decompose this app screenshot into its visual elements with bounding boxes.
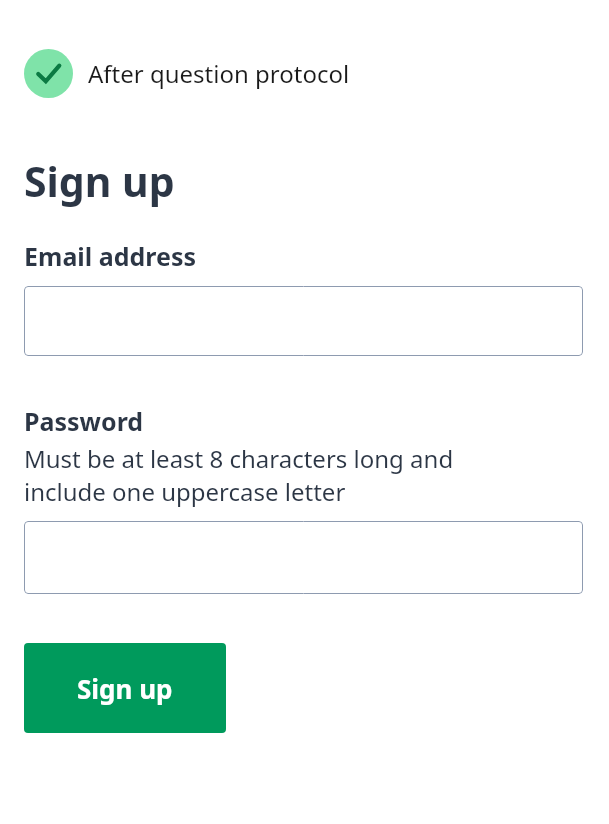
staticText: Sign up [77,671,173,706]
staticText: Email address [24,239,197,273]
other: Completed [24,49,73,98]
staticText: After question protocol [88,57,350,90]
staticText: Must be at least 8 characters long and i… [24,442,454,508]
button[interactable] [24,286,583,356]
button[interactable] [24,521,583,594]
staticText: Sign up [24,153,175,209]
staticText: Password [24,404,144,438]
button[interactable]: Sign up [24,643,226,733]
